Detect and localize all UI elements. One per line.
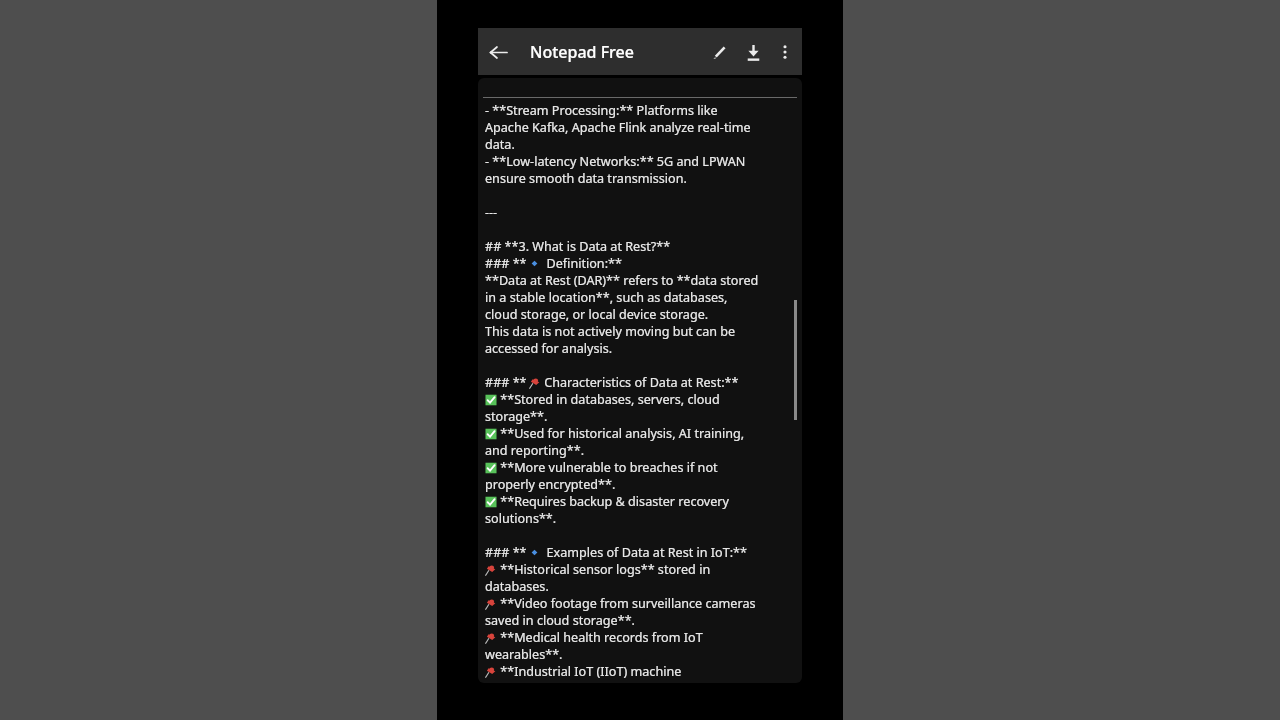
staticText: **Historical sensor logs** stored in bbox=[497, 561, 711, 578]
staticText: in a stable location**, such as database… bbox=[485, 289, 728, 306]
button[interactable]: Back bbox=[478, 32, 518, 72]
staticText: wearables**. bbox=[485, 646, 563, 663]
staticText: **Industrial IoT (IIoT) machine bbox=[497, 663, 682, 680]
staticText: **Data at Rest (DAR)** refers to **data … bbox=[485, 272, 759, 289]
staticText: saved in cloud storage**. bbox=[485, 612, 635, 629]
staticText: storage**. bbox=[485, 408, 548, 425]
staticText: **Requires backup & disaster recovery bbox=[497, 493, 729, 510]
staticText: ### ** bbox=[485, 544, 527, 561]
staticText: **Used for historical analysis, AI train… bbox=[497, 425, 745, 442]
button[interactable]: Download bbox=[736, 35, 770, 69]
staticText: Definition:** bbox=[540, 255, 622, 272]
staticText: cloud storage, or local device storage. bbox=[485, 306, 709, 323]
staticText: - **Low-latency Networks:** 5G and LPWAN bbox=[485, 153, 746, 170]
staticText: databases. bbox=[485, 578, 549, 595]
staticText: solutions**. bbox=[485, 510, 557, 527]
staticText: **Medical health records from IoT bbox=[497, 629, 703, 646]
staticText: This data is not actively moving but can… bbox=[485, 323, 736, 340]
staticText: Notepad Free bbox=[530, 41, 634, 63]
staticText: Examples of Data at Rest in IoT:** bbox=[540, 544, 747, 561]
staticText: **More vulnerable to breaches if not bbox=[497, 459, 718, 476]
staticText: ensure smooth data transmission. bbox=[485, 170, 687, 187]
button[interactable]: More options bbox=[770, 37, 800, 67]
staticText: Characteristics of Data at Rest:** bbox=[541, 374, 739, 391]
staticText: ### ** bbox=[485, 374, 527, 391]
staticText: properly encrypted**. bbox=[485, 476, 616, 493]
staticText: data. bbox=[485, 136, 515, 153]
staticText: - **Stream Processing:** Platforms like bbox=[485, 102, 718, 119]
staticText: ### ** bbox=[485, 255, 527, 272]
staticText: accessed for analysis. bbox=[485, 340, 613, 357]
staticText: and reporting**. bbox=[485, 442, 585, 459]
staticText: **Video footage from surveillance camera… bbox=[497, 595, 756, 612]
button[interactable]: Edit bbox=[702, 35, 736, 69]
staticText: **Stored in databases, servers, cloud bbox=[497, 391, 720, 408]
staticText: ## **3. What is Data at Rest?** bbox=[485, 238, 671, 255]
button[interactable]: - **Stream Processing:** Platforms like bbox=[478, 78, 802, 683]
staticText: Apache Kafka, Apache Flink analyze real-… bbox=[485, 119, 751, 136]
staticText: --- bbox=[485, 204, 498, 221]
